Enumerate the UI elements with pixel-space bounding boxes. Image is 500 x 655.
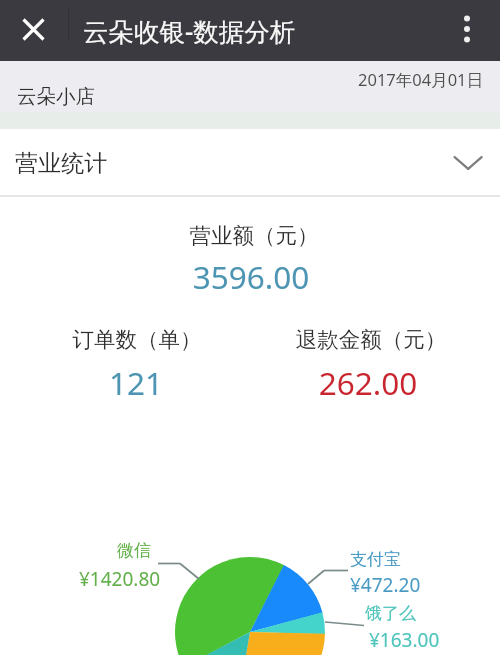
button[interactable]: Close: [0, 0, 68, 61]
staticText: 支付宝: [350, 549, 401, 570]
staticText: 云朵收银-数据分析: [83, 14, 296, 49]
staticText: 饿了么: [365, 603, 416, 624]
staticText: 营业统计: [15, 149, 107, 178]
staticText: 营业额（元）: [134, 222, 374, 249]
staticText: ¥1420.80: [79, 566, 161, 592]
staticText: ¥163.00: [369, 627, 440, 653]
staticText: 3596.00: [131, 255, 371, 298]
button[interactable]: 营业统计: [0, 129, 500, 197]
staticText: 微信: [117, 540, 151, 561]
staticText: 262.00: [248, 361, 488, 404]
staticText: 退款金额（元）: [251, 326, 491, 353]
staticText: ¥472.20: [350, 572, 421, 598]
staticText: 2017年04月01日: [358, 68, 484, 91]
staticText: 云朵小店: [17, 84, 95, 109]
staticText: 订单数（单）: [17, 326, 257, 353]
staticText: 121: [16, 361, 256, 404]
button[interactable]: More options: [440, 0, 500, 61]
